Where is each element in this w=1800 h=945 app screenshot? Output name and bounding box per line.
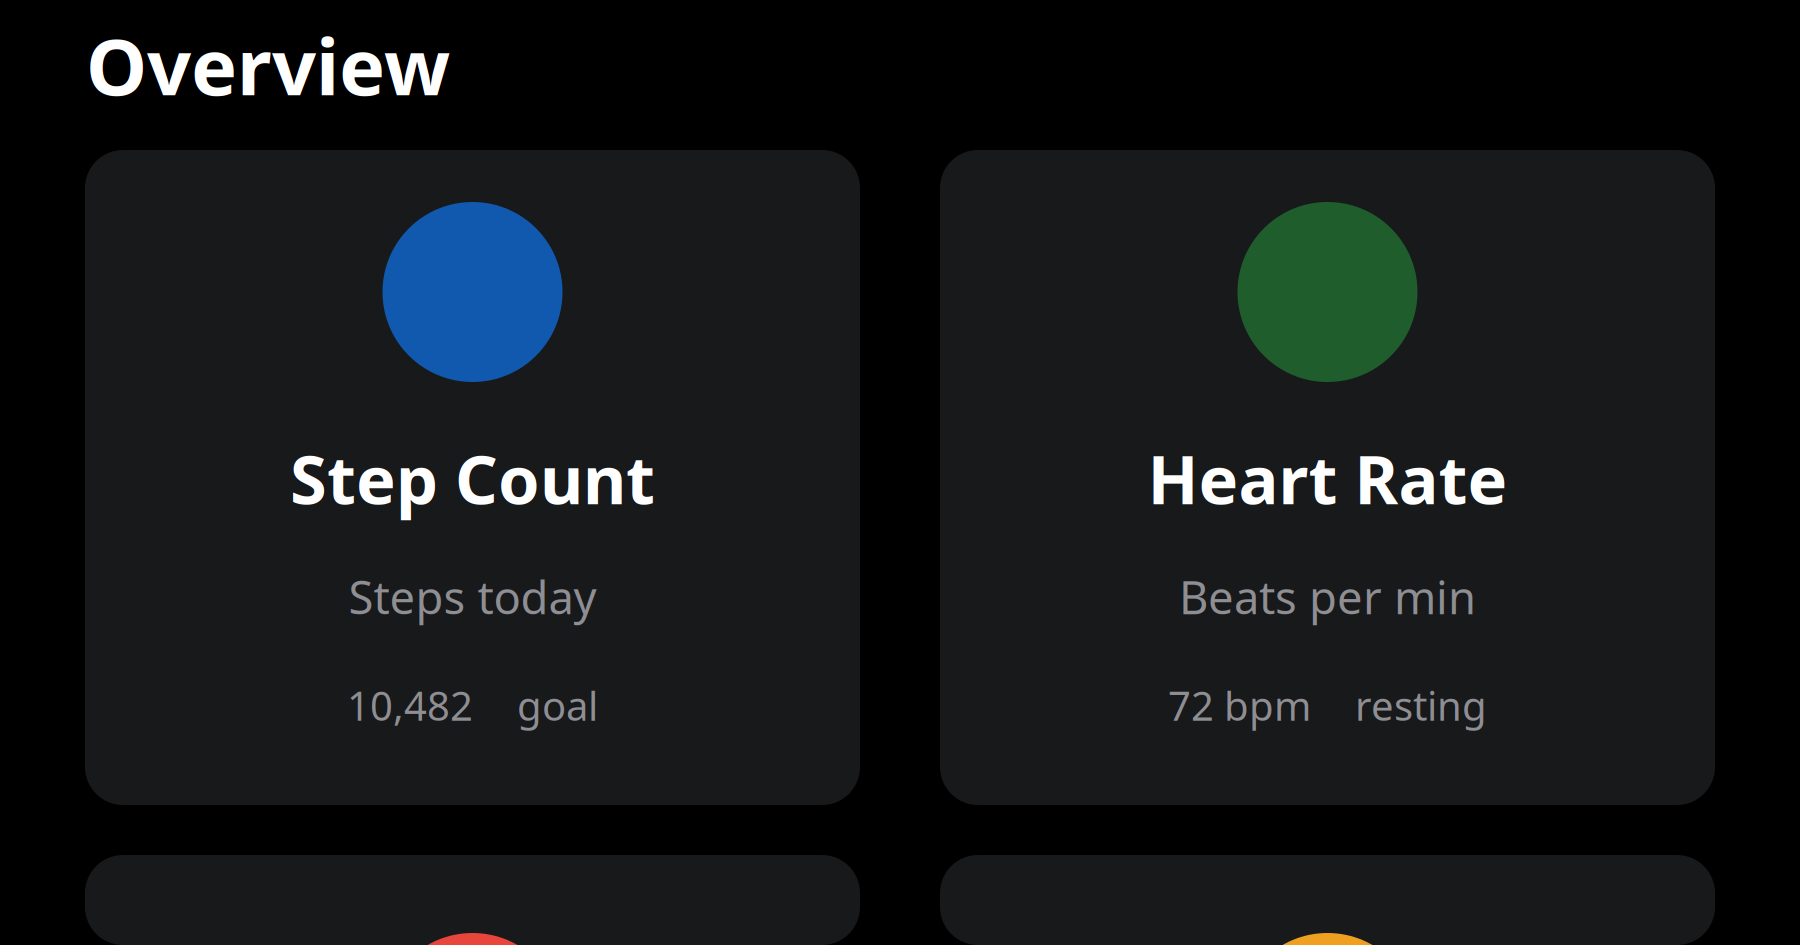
button[interactable]: Sleep Time — [940, 855, 1715, 945]
staticText: goal — [517, 679, 598, 732]
button[interactable]: Move Ring — [85, 855, 860, 945]
button[interactable]: Step Count — [85, 150, 860, 805]
staticText: Heart Rate — [1147, 434, 1507, 522]
staticText: Step Count — [290, 434, 655, 522]
staticText: 10,482 — [347, 679, 473, 732]
staticText: Beats per min — [1179, 566, 1476, 627]
button[interactable]: Heart Rate — [940, 150, 1715, 805]
staticText: resting — [1355, 679, 1487, 732]
staticText: Overview — [86, 14, 450, 117]
staticText: Steps today — [348, 566, 596, 627]
staticText: 72 bpm — [1168, 679, 1311, 732]
